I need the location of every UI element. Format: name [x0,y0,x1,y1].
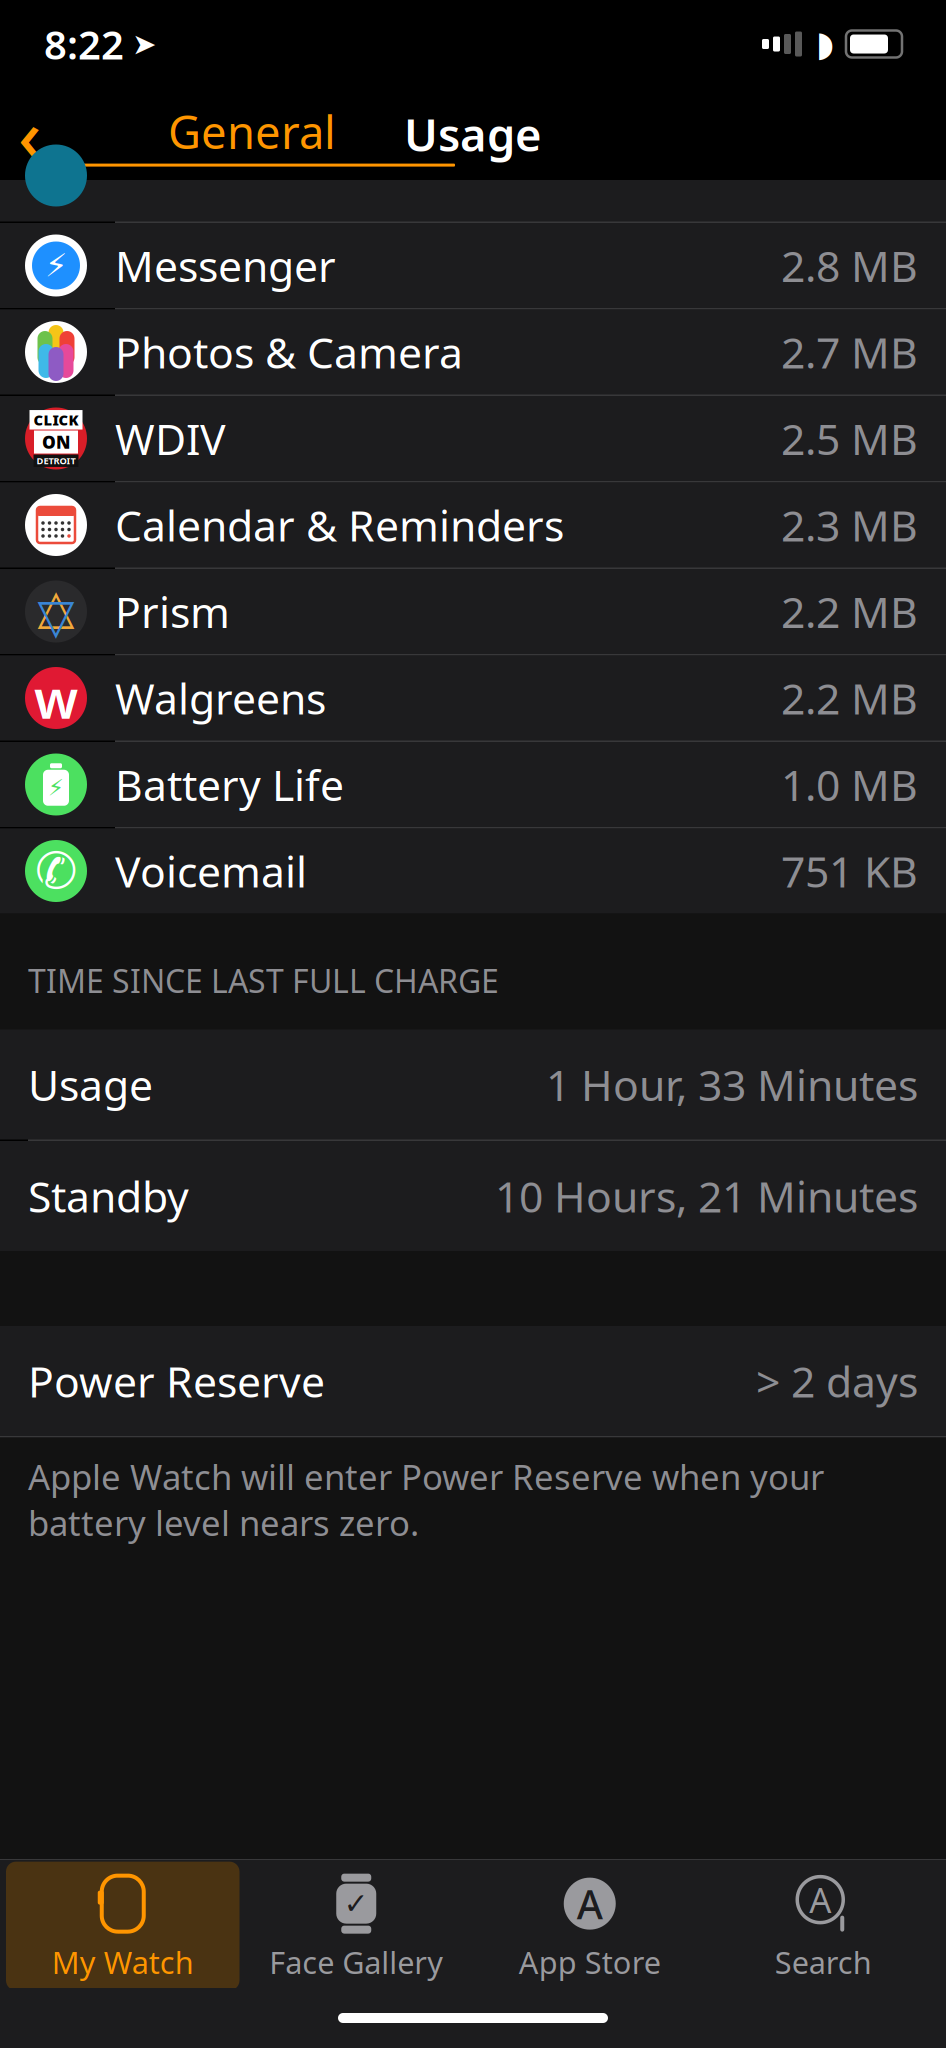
staticText: 1.0 MB [781,756,918,813]
staticText: 1 Hour, 33 Minutes [546,1056,918,1113]
staticText: App Store [519,1942,661,1982]
staticText: 8:22 [44,17,124,70]
staticText: Apple Watch will enter Power Reserve whe… [28,1453,824,1546]
staticText: Voicemail [115,843,307,899]
button[interactable]: CLICK [0,396,946,482]
staticText: > 2 days [756,1353,918,1409]
staticText: Power Reserve [28,1353,325,1409]
button[interactable]: ⚡︎ [0,742,946,828]
button[interactable]: Calendar & Reminders [0,482,946,569]
staticText: ▽ [37,589,74,644]
staticText: Messenger [115,237,336,294]
button[interactable]: My Watch [6,1862,239,1990]
staticText: Walgreens [115,670,326,726]
button[interactable]: ⚡︎ [0,223,946,309]
staticText: 2.3 MB [781,497,918,553]
staticText: Prism [115,583,230,640]
button[interactable]: △ [0,569,946,655]
staticText: w [34,663,78,733]
button[interactable]: ‹ [0,78,473,190]
staticText: 2.2 MB [781,583,918,640]
button[interactable]: ✆ [0,828,946,913]
staticText: ON [42,430,70,453]
staticText: Usage [404,104,542,164]
staticText: ✓ [344,1887,369,1920]
staticText: WDIV [115,410,226,467]
staticText: 2.8 MB [781,237,918,294]
staticText: △ [37,579,74,634]
staticText: 751 KB [781,843,918,899]
staticText: Photos & Camera [115,324,463,380]
staticText: ◗ [816,24,834,64]
button[interactable]: A [706,1862,940,1990]
staticText: ⚡︎ [45,247,67,284]
button[interactable]: Photos & Camera [0,309,946,396]
staticText: 10 Hours, 21 Minutes [495,1168,918,1224]
staticText: ✆ [35,842,77,900]
staticText: 2.7 MB [781,324,918,380]
staticText: Standby [28,1168,189,1224]
staticText: 2.5 MB [781,410,918,467]
staticText: General [168,101,336,162]
staticText: ➤ [132,27,157,61]
button[interactable]: ✓ [239,1862,473,1990]
staticText: DETROIT [36,455,75,467]
staticText: ⚡︎ [48,775,64,801]
button[interactable]: w [0,655,946,742]
staticText: Face Gallery [269,1942,443,1982]
staticText: 2.2 MB [781,670,918,726]
staticText: Battery Life [115,756,344,813]
staticText: A [809,1877,831,1923]
staticText: TIME SINCE LAST FULL CHARGE [28,959,499,1002]
staticText: CLICK [33,410,78,430]
staticText: ‹ [18,86,41,182]
staticText: Search [775,1942,872,1982]
staticText: Calendar & Reminders [115,497,564,553]
staticText: My Watch [52,1942,194,1982]
staticText: Usage [28,1056,153,1113]
staticText: A [577,1877,603,1930]
button[interactable]: A [473,1862,706,1990]
